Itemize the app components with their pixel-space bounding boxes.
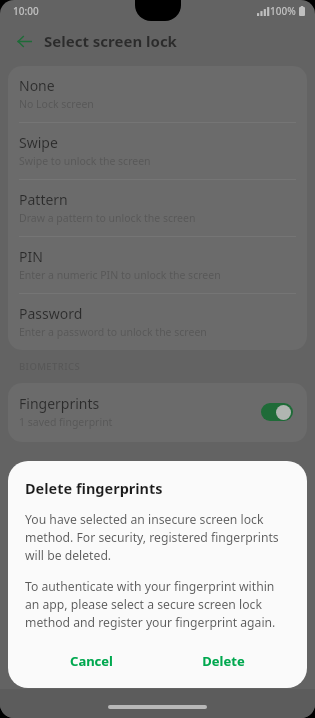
staticText: None bbox=[19, 76, 55, 95]
button[interactable]: Fingerprints toggle bbox=[261, 403, 293, 421]
staticText: Swipe to unlock the screen bbox=[19, 154, 151, 168]
button[interactable]: Delete bbox=[157, 643, 290, 679]
staticText: Enter a password to unlock the screen bbox=[19, 325, 207, 339]
button[interactable]: Fingerprints bbox=[8, 383, 307, 442]
button[interactable]: Pattern bbox=[8, 180, 307, 237]
staticText: You have selected an insecure screen loc… bbox=[25, 511, 290, 564]
button[interactable]: PIN bbox=[8, 237, 307, 294]
button[interactable]: Back bbox=[8, 25, 40, 57]
staticText: Password bbox=[19, 304, 83, 323]
staticText: No Lock screen bbox=[19, 97, 94, 111]
staticText: Enter a numeric PIN to unlock the screen bbox=[19, 268, 221, 282]
button[interactable]: Password bbox=[8, 294, 307, 350]
staticText: Pattern bbox=[19, 190, 68, 209]
staticText: To authenticate with your fingerprint wi… bbox=[25, 578, 290, 631]
button[interactable]: Swipe bbox=[8, 123, 307, 180]
staticText: Delete fingerprints bbox=[25, 478, 163, 498]
staticText: PIN bbox=[19, 247, 43, 266]
staticText: 1 saved fingerprint bbox=[19, 415, 113, 429]
staticText: 100% bbox=[270, 4, 296, 18]
staticText: Delete bbox=[202, 652, 245, 670]
staticText: Swipe bbox=[19, 133, 58, 152]
staticText: Fingerprints bbox=[19, 394, 100, 413]
button[interactable]: None bbox=[8, 66, 307, 123]
staticText: Select screen lock bbox=[44, 31, 177, 51]
staticText: BIOMETRICS bbox=[19, 360, 81, 373]
button[interactable]: Cancel bbox=[25, 643, 157, 679]
staticText: Cancel bbox=[70, 652, 113, 670]
staticText: Draw a pattern to unlock the screen bbox=[19, 211, 196, 225]
staticText: 10:00 bbox=[13, 4, 39, 18]
